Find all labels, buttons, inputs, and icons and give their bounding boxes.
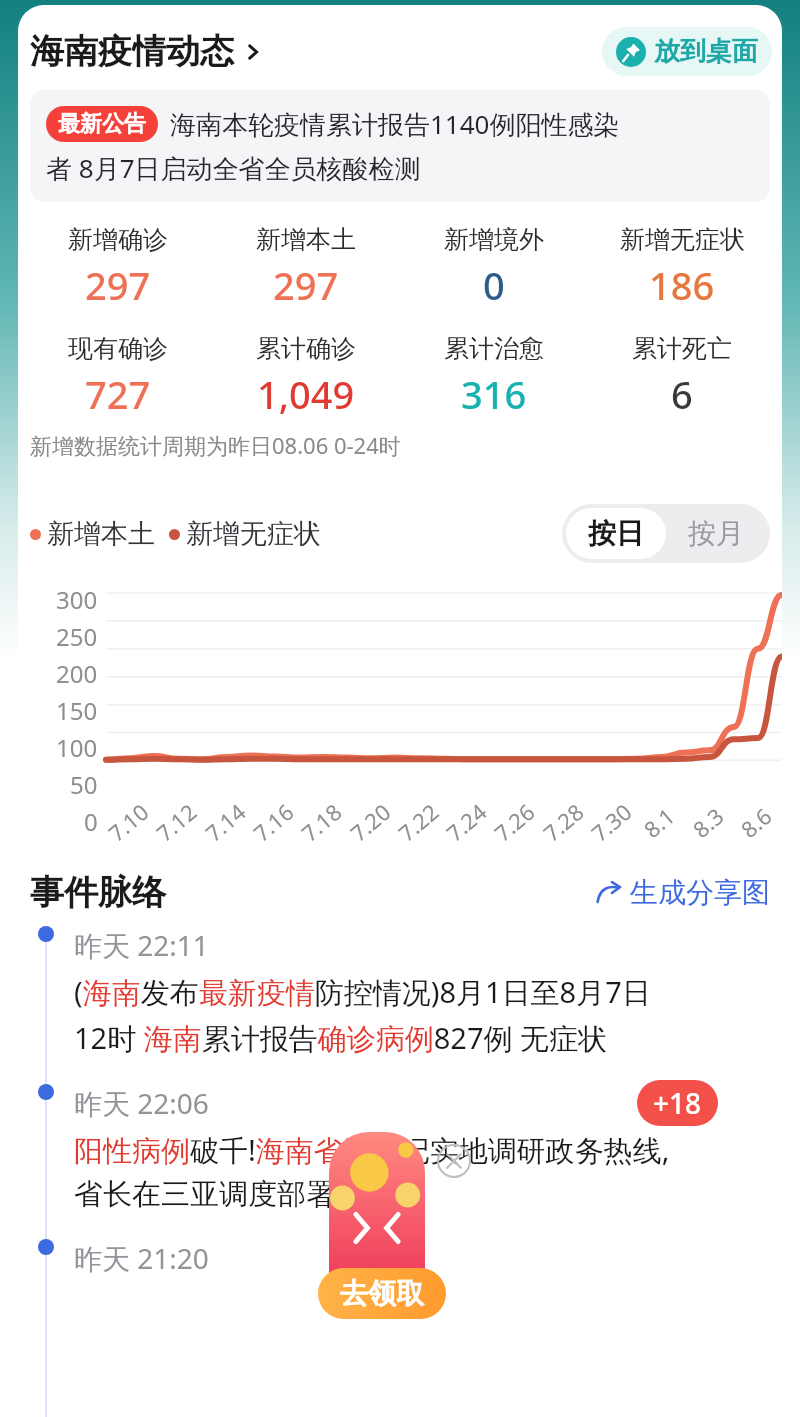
staticText: 0 (84, 805, 98, 838)
staticText: 新增无症状 (186, 517, 321, 551)
staticText: 727 (85, 368, 151, 420)
button[interactable]: 昨天 22:11 (18, 926, 782, 1058)
staticText: 7.22 (391, 796, 444, 848)
staticText: 累计治愈 (444, 333, 544, 364)
button[interactable]: 昨天 22:06 (18, 1084, 782, 1213)
staticText: 250 (56, 620, 98, 653)
staticText: 7.16 (246, 796, 299, 848)
button[interactable]: 现有确诊 (24, 333, 212, 420)
button[interactable]: 新增境外 (400, 224, 588, 311)
staticText: 累计确诊 (256, 333, 356, 364)
button[interactable]: 放到桌面 (602, 27, 772, 76)
button[interactable]: 红包领取 (329, 1132, 425, 1282)
staticText: 297 (273, 259, 339, 311)
staticText: 新增本土 (47, 517, 155, 551)
staticText: 8.3 (686, 800, 730, 844)
button[interactable]: 按月 (666, 508, 766, 559)
staticText: 7.10 (101, 796, 154, 848)
staticText: 186 (649, 259, 715, 311)
staticText: 去领取 (340, 1276, 424, 1311)
staticText: 7.18 (294, 796, 347, 848)
staticText: 7.14 (198, 796, 251, 848)
staticText: 8.6 (734, 800, 778, 844)
staticText: 昨天 21:20 (74, 1239, 209, 1277)
button[interactable]: 关闭 (437, 1144, 471, 1178)
staticText: 新增数据统计周期为昨日08.06 0-24时 (30, 430, 401, 460)
button[interactable]: 累计治愈 (400, 333, 588, 420)
button[interactable]: 新增确诊 (24, 224, 212, 311)
staticText: 现有确诊 (68, 333, 168, 364)
staticText: +18 (653, 1084, 702, 1122)
staticText: 7.28 (536, 796, 589, 848)
staticText: 150 (56, 694, 98, 727)
staticText: 12时 海南累计报告确诊病例827例 无症状 (74, 1018, 608, 1058)
staticText: 新增本土 (256, 224, 356, 255)
staticText: 累计死亡 (632, 333, 732, 364)
staticText: (海南发布最新疫情防控情况)8月1日至8月7日 (74, 972, 651, 1012)
button[interactable]: 生成分享图 (594, 875, 770, 910)
staticText: 1,049 (257, 368, 355, 420)
staticText: 昨天 22:11 (74, 926, 209, 964)
staticText: 200 (56, 657, 98, 690)
staticText: 按月 (688, 516, 744, 551)
staticText: 6 (671, 368, 693, 420)
staticText: 海南本轮疫情累计报告1140例阳性感染 (170, 106, 620, 142)
button[interactable]: 新增无症状 (588, 224, 776, 311)
button[interactable]: 海南疫情动态 (30, 30, 264, 73)
staticText: 者 8月7日启动全省全员核酸检测 (46, 150, 421, 186)
button[interactable]: 最新公告 (30, 90, 770, 202)
button[interactable]: 去领取 (318, 1268, 446, 1319)
staticText: 100 (56, 731, 98, 764)
staticText: 316 (461, 368, 527, 420)
staticText: 7.24 (439, 796, 492, 848)
button[interactable]: 新增本土 (212, 224, 400, 311)
staticText: 0 (483, 259, 505, 311)
button[interactable]: 昨天 21:20 (18, 1239, 782, 1277)
staticText: 海南疫情动态 (30, 30, 234, 73)
button[interactable]: 按日 (566, 508, 666, 559)
staticText: 阳性病例破千!海南省委书记实地调研政务热线, (74, 1130, 670, 1170)
staticText: 放到桌面 (654, 35, 758, 68)
staticText: 省长在三亚调度部署 (74, 1176, 335, 1213)
button[interactable]: +18 (637, 1080, 718, 1126)
button[interactable]: 累计死亡 (588, 333, 776, 420)
staticText: 50 (70, 768, 98, 801)
button[interactable]: 累计确诊 (212, 333, 400, 420)
staticText: 新增确诊 (68, 224, 168, 255)
staticText: 300 (56, 583, 98, 616)
staticText: 7.12 (149, 796, 202, 848)
staticText: 生成分享图 (630, 875, 770, 910)
staticText: 7.26 (487, 796, 540, 848)
staticText: 7.20 (343, 796, 396, 848)
staticText: 按日 (588, 516, 644, 551)
staticText: 7.30 (584, 796, 637, 848)
staticText: 8.1 (637, 800, 681, 844)
staticText: 昨天 22:06 (74, 1084, 209, 1122)
staticText: 事件脉络 (30, 871, 166, 914)
staticText: 297 (85, 259, 151, 311)
staticText: 新增境外 (444, 224, 544, 255)
staticText: 新增无症状 (620, 224, 745, 255)
staticText: 最新公告 (58, 110, 146, 138)
